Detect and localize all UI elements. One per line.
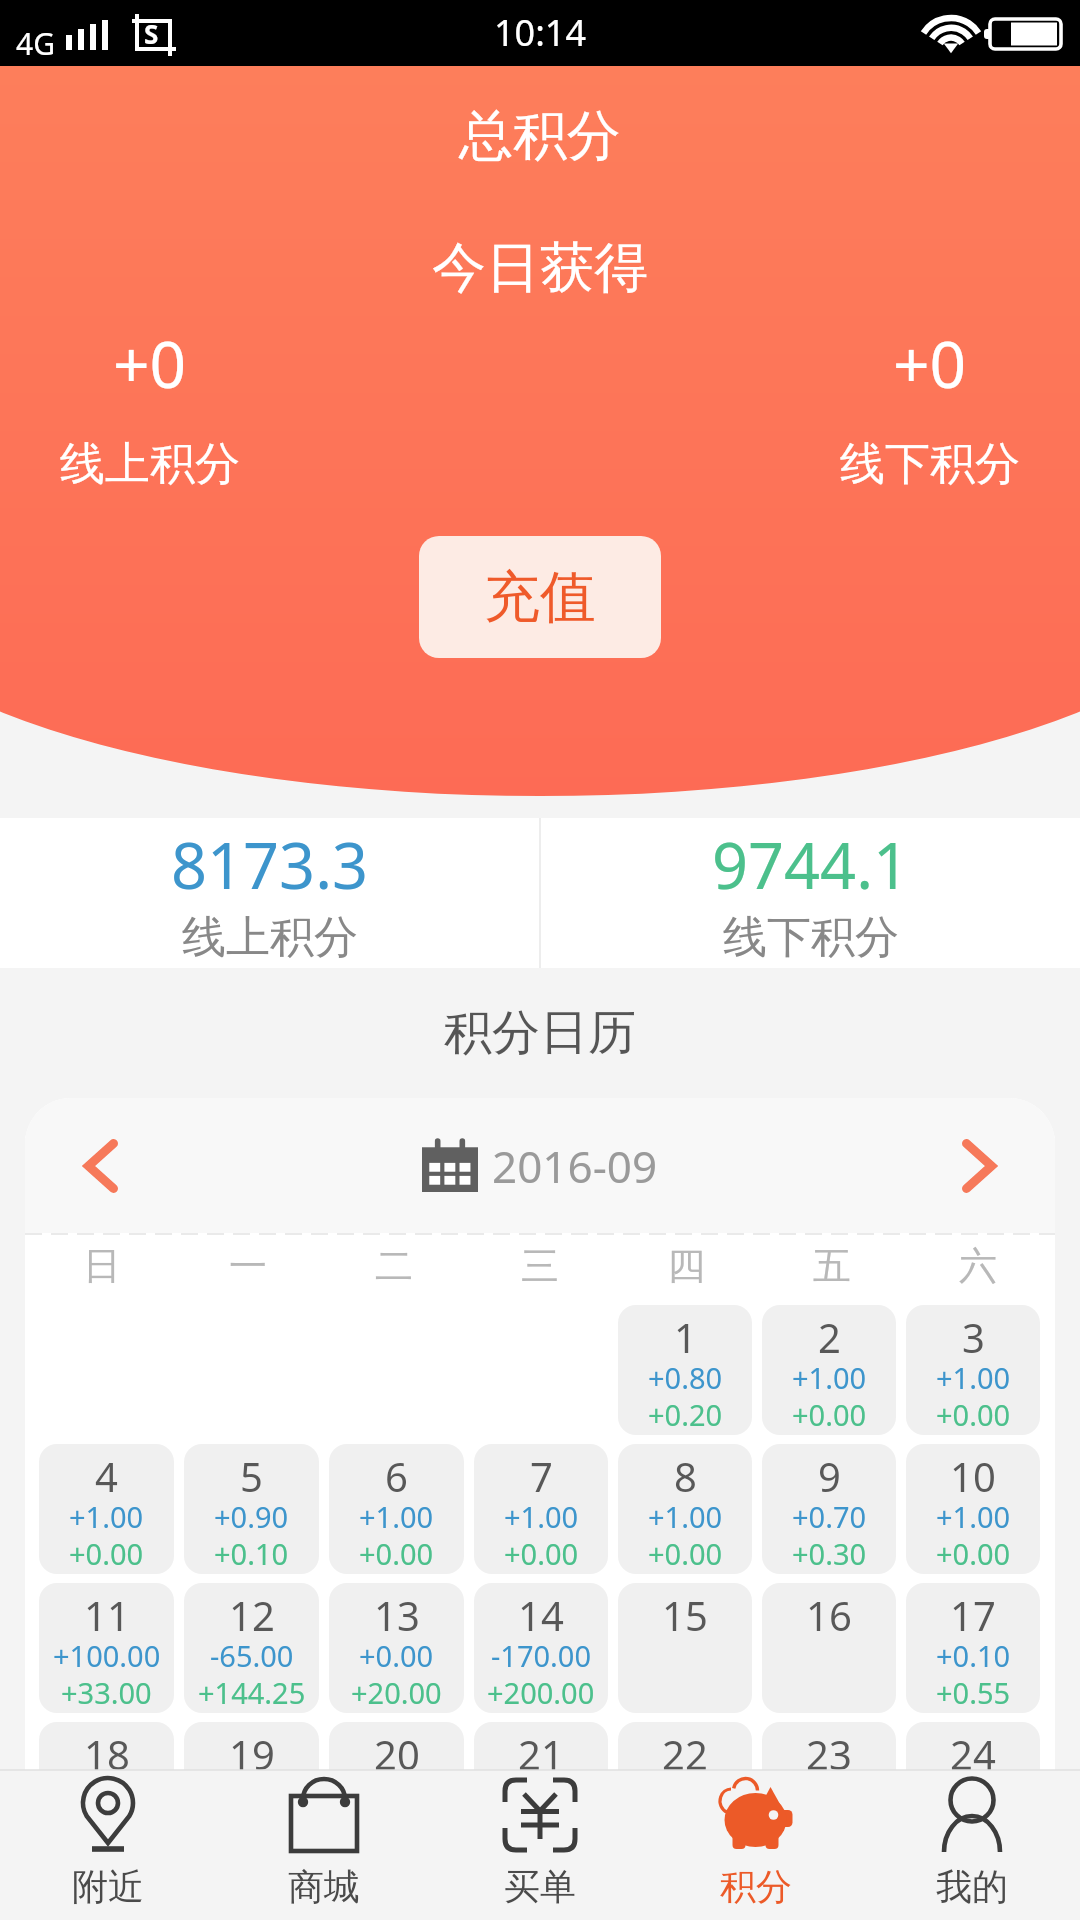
- staticText: +1.00: [792, 1358, 867, 1397]
- button[interactable]: 22: [618, 1722, 752, 1852]
- staticText: +0: [113, 320, 187, 407]
- button[interactable]: Next month: [939, 1126, 1019, 1206]
- staticText: 8: [674, 1449, 697, 1503]
- staticText: 今日获得: [432, 234, 648, 302]
- staticText: 17: [950, 1588, 996, 1642]
- staticText: +0.90: [214, 1497, 289, 1536]
- staticText: +0.00: [936, 1534, 1011, 1573]
- button[interactable]: 14: [474, 1583, 608, 1713]
- button[interactable]: 12: [184, 1583, 319, 1713]
- button[interactable]: 3: [906, 1305, 1040, 1435]
- staticText: 9: [818, 1449, 841, 1503]
- staticText: 4G: [16, 23, 55, 64]
- staticText: 五: [813, 1242, 851, 1290]
- button[interactable]: Previous month: [61, 1126, 141, 1206]
- staticText: 15: [662, 1588, 708, 1642]
- staticText: 13: [374, 1588, 420, 1642]
- staticText: 1: [674, 1310, 697, 1364]
- button[interactable]: 21: [474, 1722, 608, 1852]
- button[interactable]: 5: [184, 1444, 319, 1574]
- staticText: 7: [530, 1449, 553, 1503]
- staticText: -170.00: [491, 1636, 592, 1675]
- staticText: 20: [374, 1727, 420, 1781]
- staticText: +0.55: [936, 1673, 1011, 1712]
- button[interactable]: 商城: [216, 1770, 432, 1920]
- staticText: 积分: [720, 1864, 792, 1909]
- button[interactable]: 1: [618, 1305, 752, 1435]
- staticText: +1.00: [936, 1497, 1011, 1536]
- staticText: 12: [229, 1588, 275, 1642]
- staticText: 6: [385, 1449, 408, 1503]
- staticText: +100.00: [53, 1636, 161, 1675]
- staticText: 10: [950, 1449, 996, 1503]
- staticText: 24: [950, 1727, 996, 1781]
- staticText: +1.00: [648, 1497, 723, 1536]
- button[interactable]: 8: [618, 1444, 752, 1574]
- staticText: +1.00: [936, 1358, 1011, 1397]
- staticText: +144.25: [198, 1673, 306, 1712]
- button[interactable]: 24: [906, 1722, 1040, 1852]
- staticText: +200.00: [487, 1673, 595, 1712]
- button[interactable]: 充值: [419, 536, 661, 658]
- button[interactable]: 我的: [864, 1770, 1080, 1920]
- staticText: 16: [806, 1588, 852, 1642]
- staticText: +0.20: [648, 1395, 723, 1434]
- staticText: +0.00: [69, 1534, 144, 1573]
- button[interactable]: 9744.1: [541, 818, 1080, 968]
- staticText: +0.00: [504, 1534, 579, 1573]
- staticText: +0.00: [648, 1534, 723, 1573]
- button[interactable]: 7: [474, 1444, 608, 1574]
- staticText: +0.10: [936, 1636, 1011, 1675]
- staticText: +0.30: [792, 1534, 867, 1573]
- staticText: +1.00: [69, 1497, 144, 1536]
- staticText: 2016-09: [492, 1136, 658, 1196]
- staticText: +20.00: [351, 1673, 442, 1712]
- staticText: +0.70: [792, 1497, 867, 1536]
- staticText: 总积分: [459, 102, 621, 170]
- staticText: 六: [959, 1242, 997, 1290]
- button[interactable]: 15: [618, 1583, 752, 1713]
- staticText: 23: [806, 1727, 852, 1781]
- button[interactable]: 9: [762, 1444, 896, 1574]
- staticText: +0.00: [359, 1636, 434, 1675]
- staticText: 8173.3: [171, 822, 369, 908]
- button[interactable]: 17: [906, 1583, 1040, 1713]
- staticText: +33.00: [61, 1673, 152, 1712]
- staticText: +0.10: [214, 1534, 289, 1573]
- staticText: +0.00: [792, 1395, 867, 1434]
- staticText: 22: [662, 1727, 708, 1781]
- staticText: 3: [962, 1310, 985, 1364]
- staticText: +0.00: [936, 1395, 1011, 1434]
- button[interactable]: 6: [329, 1444, 464, 1574]
- staticText: S: [144, 16, 159, 51]
- button[interactable]: 13: [329, 1583, 464, 1713]
- staticText: 线上积分: [182, 910, 358, 965]
- staticText: +1.00: [504, 1497, 579, 1536]
- staticText: 线下积分: [723, 910, 899, 965]
- staticText: 充值: [484, 562, 596, 633]
- button[interactable]: 积分: [648, 1770, 864, 1920]
- button[interactable]: 11: [39, 1583, 174, 1713]
- staticText: 一: [229, 1242, 267, 1290]
- button[interactable]: 20: [329, 1722, 464, 1852]
- button[interactable]: 2: [762, 1305, 896, 1435]
- button[interactable]: 23: [762, 1722, 896, 1852]
- staticText: 买单: [504, 1864, 576, 1909]
- button[interactable]: 10: [906, 1444, 1040, 1574]
- staticText: 二: [375, 1242, 413, 1290]
- button[interactable]: 附近: [0, 1770, 216, 1920]
- button[interactable]: 买单: [432, 1770, 648, 1920]
- staticText: 四: [667, 1242, 705, 1290]
- staticText: 2: [818, 1310, 841, 1364]
- button[interactable]: 16: [762, 1583, 896, 1713]
- button[interactable]: 4: [39, 1444, 174, 1574]
- button[interactable]: 19: [184, 1722, 319, 1852]
- staticText: 三: [521, 1242, 559, 1290]
- staticText: +0.80: [648, 1358, 723, 1397]
- staticText: 5: [240, 1449, 263, 1503]
- button[interactable]: 8173.3: [0, 818, 539, 968]
- staticText: 11: [84, 1588, 130, 1642]
- button[interactable]: 18: [39, 1722, 174, 1852]
- staticText: 附近: [72, 1864, 144, 1909]
- staticText: 线上积分: [60, 436, 240, 493]
